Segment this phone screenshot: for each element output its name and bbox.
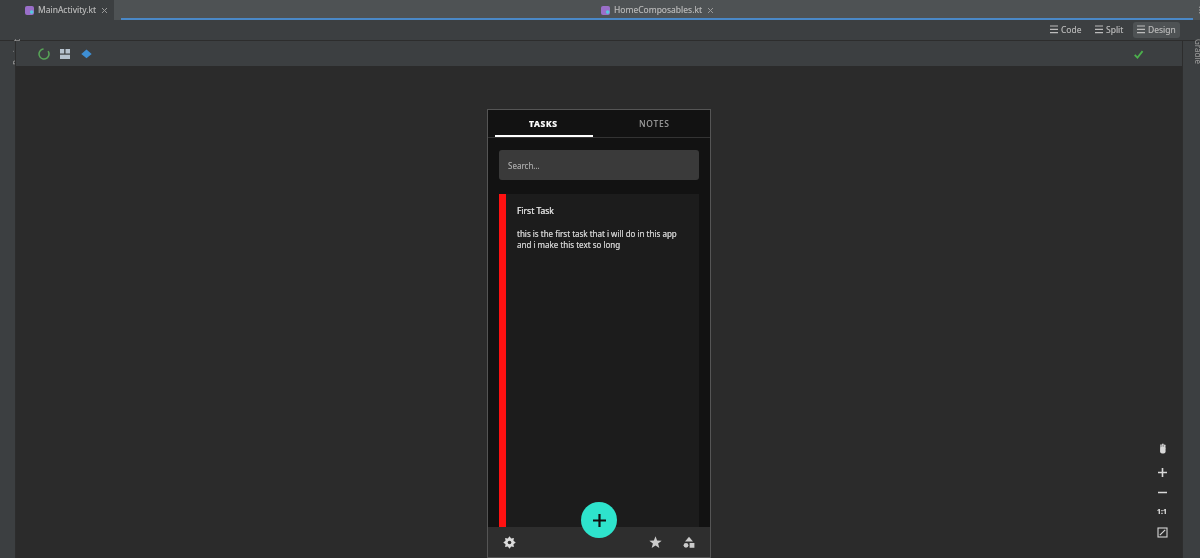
staticText: TASKS: [529, 118, 558, 130]
button[interactable]: MainActivity.kt: [18, 0, 114, 20]
staticText: Split: [1106, 24, 1124, 36]
button[interactable]: Zoom out: [1154, 484, 1170, 500]
staticText: HomeComposables.kt: [614, 4, 703, 16]
button[interactable]: TASKS: [488, 110, 599, 137]
staticText: 1:1: [1157, 507, 1167, 517]
button[interactable]: NOTES: [599, 110, 710, 137]
button[interactable]: Layout options: [58, 47, 72, 61]
button[interactable]: Pan: [1154, 440, 1170, 456]
staticText: NOTES: [639, 118, 670, 130]
button[interactable]: Refresh: [37, 47, 51, 61]
button[interactable]: Favorites: [644, 531, 666, 553]
staticText: MainActivity.kt: [38, 4, 97, 16]
button[interactable]: Add: [581, 502, 617, 538]
button[interactable]: 1:1: [1154, 504, 1170, 520]
staticText: this is the first task that i will do in…: [517, 228, 689, 250]
staticText: Resource Manager: [33, 63, 44, 134]
staticText: Code: [1061, 24, 1082, 36]
button[interactable]: Search...: [499, 150, 699, 180]
button[interactable]: Categories: [678, 531, 700, 553]
button[interactable]: Settings: [498, 531, 520, 553]
button[interactable]: Design: [1133, 22, 1180, 38]
button[interactable]: Layers: [79, 47, 93, 61]
button[interactable]: First Task: [499, 194, 699, 527]
staticText: First Task: [517, 205, 554, 217]
button[interactable]: Fit to screen: [1154, 524, 1170, 540]
button[interactable]: Code: [1046, 22, 1086, 38]
staticText: Gradle: [1193, 39, 1200, 64]
button[interactable]: Split: [1091, 22, 1128, 38]
staticText: Search...: [508, 160, 540, 171]
button[interactable]: HomeComposables.kt: [114, 0, 1200, 20]
staticText: Project: [11, 38, 22, 65]
button[interactable]: Gradle: [1186, 43, 1197, 74]
button[interactable]: Project: [3, 43, 14, 76]
button[interactable]: Zoom in: [1154, 464, 1170, 480]
staticText: Design: [1148, 24, 1176, 36]
